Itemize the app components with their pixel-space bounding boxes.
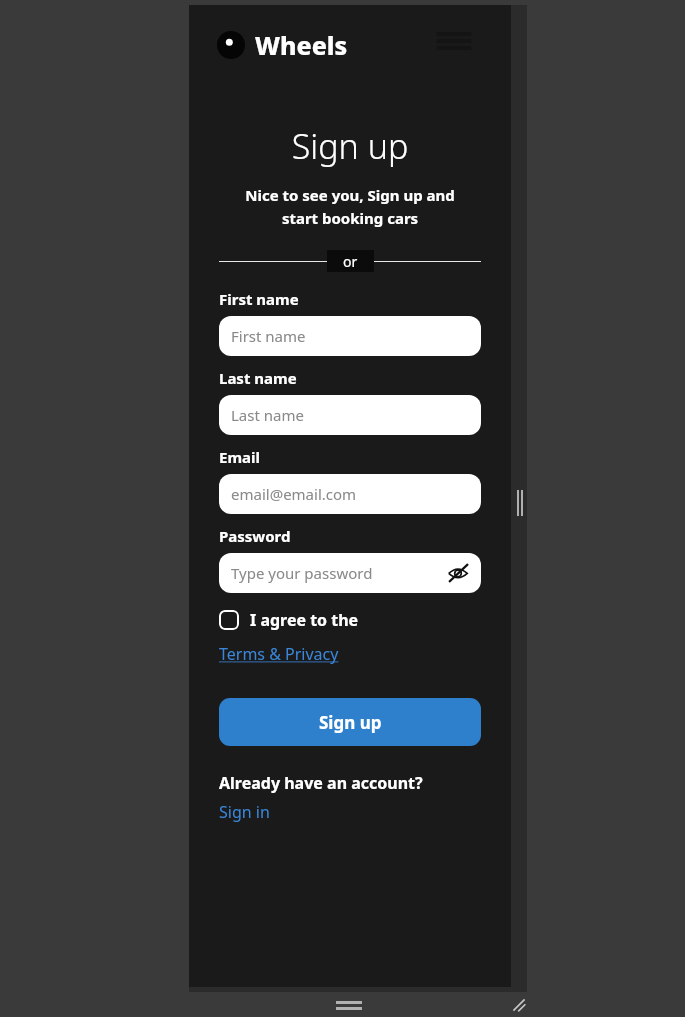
staticText: email@email.com <box>231 484 357 504</box>
staticText: First name <box>231 326 306 346</box>
staticText: Terms & Privacy <box>219 643 339 665</box>
staticText: Sign up <box>189 123 511 169</box>
button[interactable]: Type your password <box>219 553 481 593</box>
staticText: Type your password <box>231 563 373 583</box>
button[interactable]: email@email.com <box>219 474 481 514</box>
button[interactable]: First name <box>219 316 481 356</box>
button[interactable]: Wheels <box>217 28 348 62</box>
staticText: First name <box>219 289 299 309</box>
staticText: Last name <box>231 405 304 425</box>
button[interactable]: Terms & Privacy <box>219 643 339 665</box>
staticText: Nice to see you, Sign up and start booki… <box>219 185 481 228</box>
staticText: Sign up <box>319 711 382 734</box>
button[interactable]: Sign up <box>219 698 481 746</box>
staticText: Already have an account? <box>219 772 423 794</box>
staticText: Wheels <box>255 28 348 62</box>
staticText: Last name <box>219 368 297 388</box>
staticText: Password <box>219 526 291 546</box>
staticText: Email <box>219 447 260 467</box>
button[interactable]: I agree to the <box>219 609 359 631</box>
staticText: or <box>343 252 358 270</box>
button[interactable]: Last name <box>219 395 481 435</box>
staticText: I agree to the <box>250 609 359 631</box>
button[interactable]: Show password <box>445 560 471 586</box>
button[interactable]: Sign in <box>219 801 270 823</box>
staticText: Sign in <box>219 801 270 823</box>
